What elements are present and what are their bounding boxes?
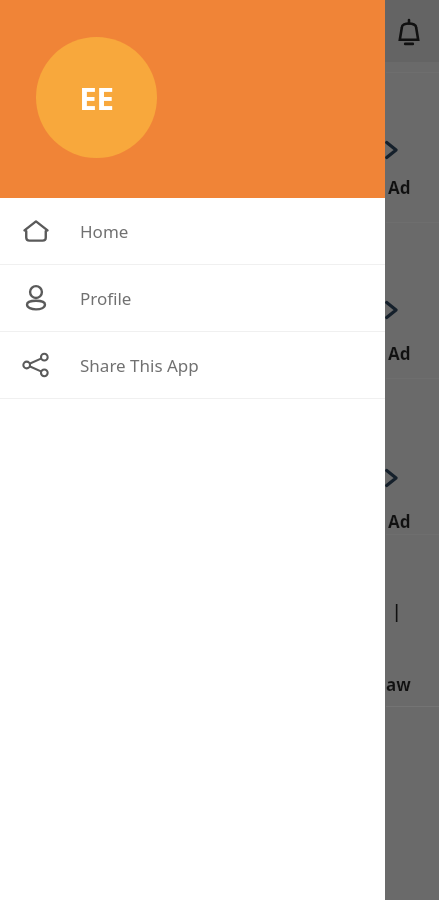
staticText: Profile [80, 287, 132, 310]
staticText: Home [80, 220, 129, 243]
staticText: aw [386, 673, 411, 696]
staticText: | [392, 600, 402, 623]
button[interactable]: Home [0, 198, 385, 264]
staticText: Share This App [80, 354, 199, 377]
staticText: Ad [388, 342, 411, 365]
button[interactable]: EE [0, 0, 385, 198]
staticText: EE [79, 77, 114, 119]
button[interactable]: Share This App [0, 332, 385, 398]
staticText: Ad [388, 510, 411, 533]
button[interactable]: Profile [0, 265, 385, 331]
button[interactable]: Notifications [392, 16, 426, 50]
staticText: Ad [388, 176, 411, 199]
